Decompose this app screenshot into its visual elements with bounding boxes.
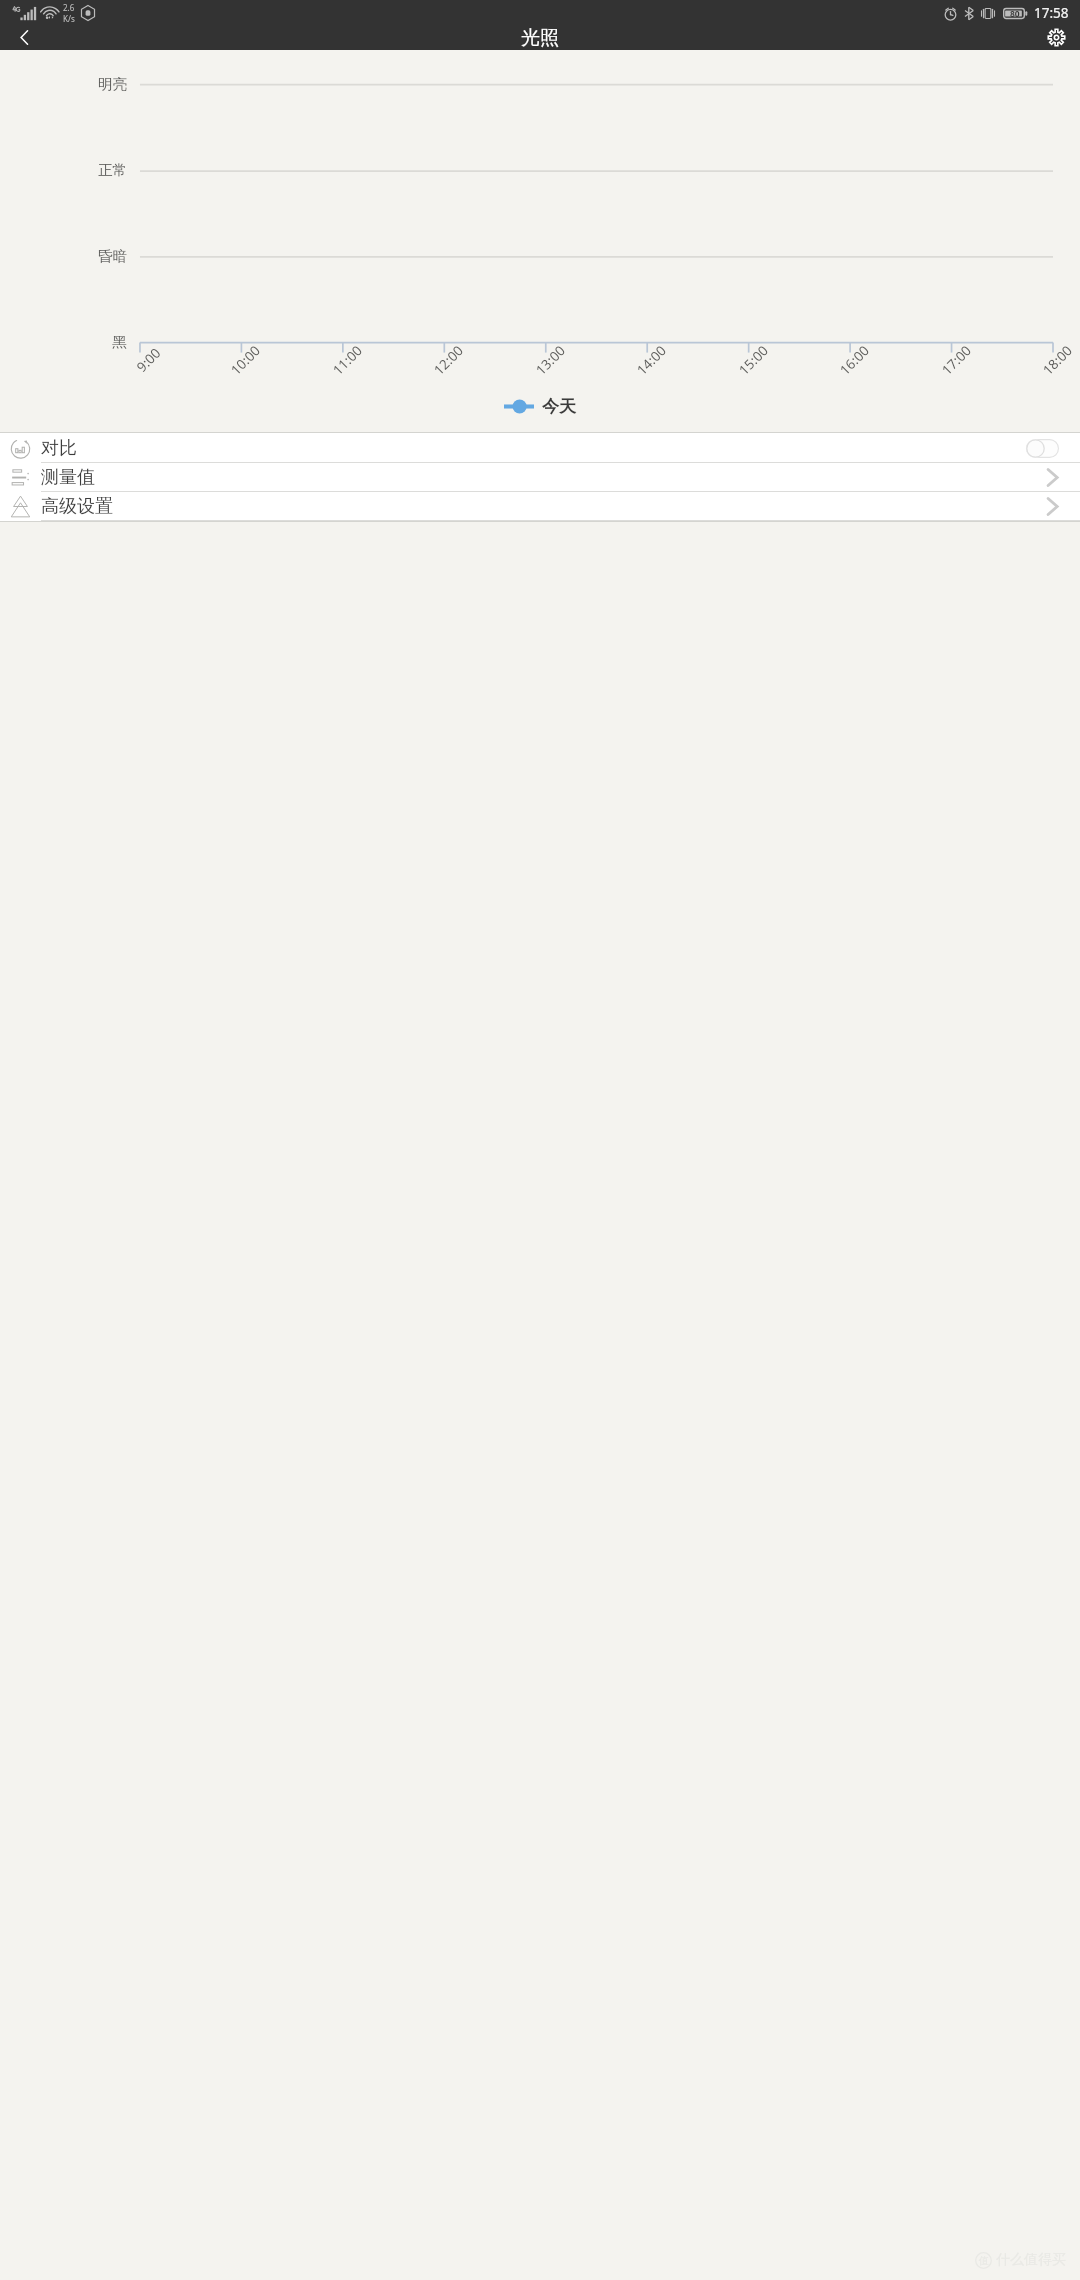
staticText: 18:00	[1039, 341, 1076, 379]
staticText: 正常	[98, 161, 127, 179]
staticText: K/s	[63, 13, 75, 24]
staticText: 黑	[112, 333, 127, 351]
staticText: 什么值得买	[996, 2251, 1066, 2269]
staticText: 对比	[41, 437, 77, 460]
staticText: 17:00	[938, 341, 975, 379]
staticText: 13:00	[532, 341, 569, 379]
button[interactable]: 今天	[496, 393, 584, 420]
button[interactable]: 高级设置	[0, 492, 1080, 521]
staticText: 2.6	[63, 2, 75, 13]
staticText: 昏暗	[98, 247, 127, 265]
staticText: 16:00	[836, 341, 873, 379]
button[interactable]: Settings	[1032, 25, 1080, 50]
button[interactable]: 测量值	[0, 463, 1080, 492]
staticText: 17:58	[1034, 4, 1069, 22]
staticText: 值	[979, 2254, 989, 2267]
button[interactable]: 对比	[0, 433, 1080, 463]
button[interactable]: 对比 switch, off	[1026, 439, 1059, 458]
staticText: 明亮	[98, 75, 127, 93]
staticText: 14:00	[633, 341, 670, 379]
staticText: 测量值	[41, 466, 95, 489]
staticText: 10:00	[227, 341, 264, 379]
staticText: 今天	[542, 396, 576, 417]
staticText: 9:00	[133, 344, 164, 376]
staticText: 高级设置	[41, 495, 113, 518]
staticText: 11:00	[329, 341, 366, 379]
staticText: 80	[1010, 8, 1020, 20]
staticText: 12:00	[430, 341, 467, 379]
staticText: 15:00	[735, 341, 772, 379]
button[interactable]: Back	[0, 25, 48, 50]
staticText: 光照	[521, 26, 559, 50]
